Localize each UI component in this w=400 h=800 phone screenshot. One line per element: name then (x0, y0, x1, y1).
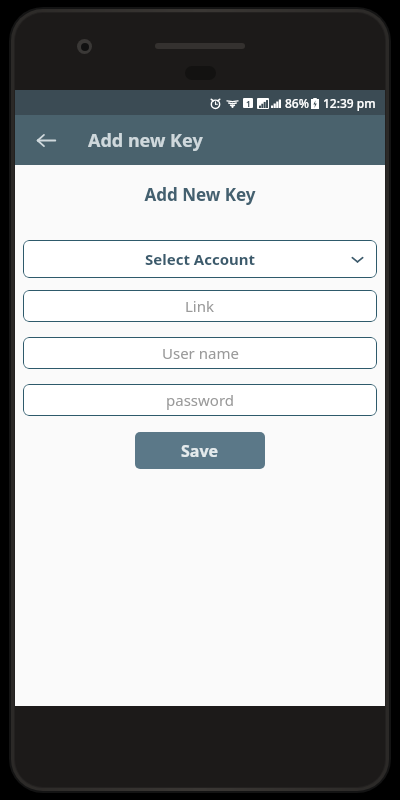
staticText: Add New Key (144, 183, 256, 206)
button[interactable]: User name (23, 337, 377, 369)
staticText: 1 (246, 98, 251, 108)
button[interactable]: Link (23, 290, 377, 322)
staticText: Save (181, 440, 219, 462)
button[interactable]: Back (25, 119, 67, 161)
staticText: 86% (285, 95, 309, 111)
button[interactable]: Select Account (23, 240, 377, 278)
button[interactable]: Save (135, 432, 265, 469)
staticText: User name (162, 343, 239, 363)
staticText: 12:39 pm (323, 95, 376, 111)
staticText: Add new Key (88, 128, 203, 153)
button[interactable]: password (23, 384, 377, 416)
staticText: Link (185, 296, 215, 316)
staticText: password (166, 390, 234, 410)
staticText: Select Account (145, 249, 256, 269)
